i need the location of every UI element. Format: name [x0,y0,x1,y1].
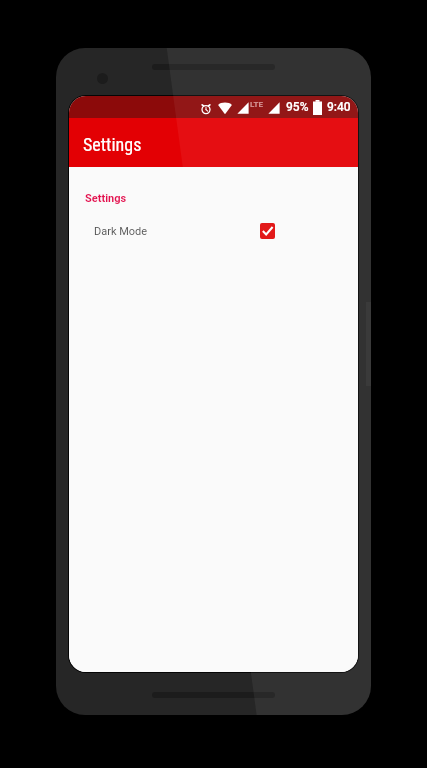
button[interactable]: Dark Mode [69,218,358,244]
staticText: 95% [286,100,309,114]
staticText: 9:40 [327,100,351,114]
other: Dark Mode, checked [260,223,275,239]
button[interactable]: Settings [85,192,127,205]
staticText: Settings [83,134,142,155]
staticText: Dark Mode [94,225,148,238]
staticText: LTE [250,100,263,109]
